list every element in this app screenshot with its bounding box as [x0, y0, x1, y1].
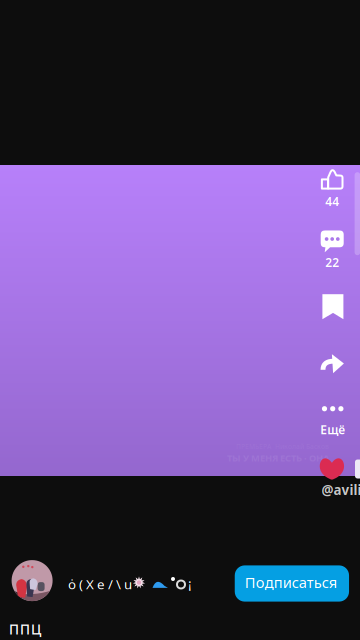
staticText: ¡ — [188, 574, 192, 592]
button[interactable]: Ещё — [311, 399, 355, 437]
staticText: 22 — [325, 254, 339, 270]
button[interactable]: Сохранить — [311, 294, 355, 319]
staticText: ппц — [9, 616, 42, 639]
staticText: ȯ(Xe/\u — [68, 575, 132, 593]
staticText: ТЫ У МЕНЯ ЕСТЬ · ОНА — [227, 452, 329, 464]
button[interactable]: Подписаться — [235, 565, 349, 602]
button[interactable]: Нравится — [310, 170, 354, 209]
button[interactable]: Автор — [69, 571, 195, 597]
staticText: 44 — [325, 193, 339, 209]
button[interactable]: Поделиться — [310, 354, 354, 373]
button[interactable]: Профиль автора — [12, 560, 53, 601]
staticText: Ещё — [320, 421, 345, 437]
staticText: @avilix — [321, 481, 360, 499]
staticText: Подписаться — [245, 572, 337, 592]
button[interactable]: Комментарии — [310, 230, 354, 270]
